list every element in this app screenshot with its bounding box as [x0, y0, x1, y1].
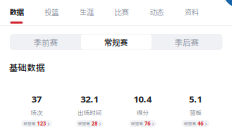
- button[interactable]: 10.4: [116, 95, 169, 127]
- staticText: 37: [31, 93, 41, 105]
- button[interactable]: 生涯: [69, 0, 104, 26]
- staticText: 资料: [184, 6, 198, 17]
- staticText: 比赛: [114, 6, 128, 17]
- button[interactable]: 数据: [0, 0, 34, 26]
- staticText: 基础数据: [9, 61, 45, 73]
- button[interactable]: 动态: [139, 0, 174, 26]
- staticText: 数据: [9, 6, 23, 17]
- button[interactable]: 资料: [174, 0, 209, 26]
- staticText: 76: [144, 120, 150, 127]
- staticText: 篮板: [189, 108, 201, 117]
- staticText: 场次: [30, 108, 42, 117]
- staticText: 46: [197, 120, 203, 127]
- staticText: 联盟第: [23, 121, 35, 126]
- staticText: 5.1: [189, 93, 202, 105]
- staticText: 季前赛: [34, 36, 58, 48]
- button[interactable]: 5.1: [169, 95, 222, 127]
- staticText: 32.1: [80, 93, 98, 105]
- staticText: ›: [152, 119, 154, 128]
- staticText: 常规赛: [104, 36, 128, 48]
- staticText: 季后赛: [175, 36, 199, 48]
- staticText: 出场时间: [77, 108, 101, 117]
- button[interactable]: 季前赛: [10, 34, 81, 49]
- button[interactable]: 37: [10, 95, 63, 127]
- button[interactable]: 季后赛: [151, 34, 222, 49]
- staticText: 得分: [136, 108, 148, 117]
- staticText: 联盟第: [131, 121, 143, 126]
- staticText: 联盟第: [78, 121, 90, 126]
- staticText: 动态: [149, 6, 163, 17]
- staticText: 28: [91, 120, 97, 127]
- staticText: 联盟第: [184, 121, 196, 126]
- staticText: 10.4: [133, 93, 151, 105]
- staticText: 投篮: [44, 6, 58, 17]
- staticText: ›: [205, 119, 207, 128]
- button[interactable]: 比赛: [104, 0, 139, 26]
- staticText: ›: [47, 119, 49, 128]
- button[interactable]: 32.1: [63, 95, 116, 127]
- button[interactable]: 常规赛: [81, 34, 151, 49]
- staticText: 123: [37, 120, 46, 127]
- staticText: 生涯: [79, 6, 93, 17]
- button[interactable]: 投篮: [34, 0, 69, 26]
- staticText: ›: [99, 119, 101, 128]
